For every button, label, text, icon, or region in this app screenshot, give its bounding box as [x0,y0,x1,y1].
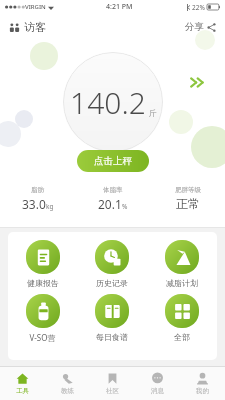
staticText: 脂肪 [31,186,44,194]
button[interactable]: 我的 [180,367,225,400]
button[interactable]: 肥胖等级 [150,186,225,211]
staticText: 历史记录 [96,278,128,288]
staticText: 健康报告 [27,278,59,288]
button[interactable]: 历史记录 [77,240,147,288]
button[interactable]: 教练 [45,367,90,400]
button[interactable]: 每日食谱 [77,294,147,342]
staticText: 33.0 [22,196,46,212]
staticText: kg [46,202,54,211]
staticText: 全部 [174,332,190,342]
button[interactable]: V-SO营 [8,294,77,343]
staticText: 每日食谱 [96,332,128,342]
button[interactable]: 健康报告 [8,240,77,288]
button[interactable]: 全部 [147,294,217,342]
staticText: VIRGIN [25,3,46,11]
other: Share [207,23,216,32]
staticText: 消息 [151,387,164,395]
button[interactable]: 分享 [185,21,216,33]
button[interactable]: 消息 [135,367,180,400]
staticText: 点击上秤 [94,155,132,167]
staticText: 140.2 [70,82,146,123]
staticText: 分享 [185,21,204,33]
staticText: 教练 [61,387,74,395]
staticText: 访客 [24,20,46,34]
staticText: 肥胖等级 [175,186,201,194]
button[interactable]: 减脂计划 [147,240,217,288]
button[interactable]: 工具 [0,367,45,400]
staticText: 4:21 PM [106,2,133,12]
button[interactable]: More [189,76,207,89]
staticText: 体脂率 [103,186,123,194]
staticText: 20.1 [98,196,122,212]
button[interactable]: 体脂率 [75,186,150,212]
button[interactable]: 140.2 [63,52,163,152]
staticText: 减脂计划 [166,278,198,288]
staticText: 斤 [149,108,157,118]
staticText: 工具 [16,387,29,395]
staticText: 22% [192,3,205,12]
staticText: 社区 [106,387,119,395]
button[interactable]: 脂肪 [0,186,75,212]
staticText: 正常 [176,196,200,211]
button[interactable]: 访客 [9,20,46,34]
staticText: % [122,202,128,211]
button[interactable]: 点击上秤 [77,150,149,172]
staticText: V-SO营 [29,332,56,343]
staticText: 我的 [196,387,209,395]
button[interactable]: 社区 [90,367,135,400]
